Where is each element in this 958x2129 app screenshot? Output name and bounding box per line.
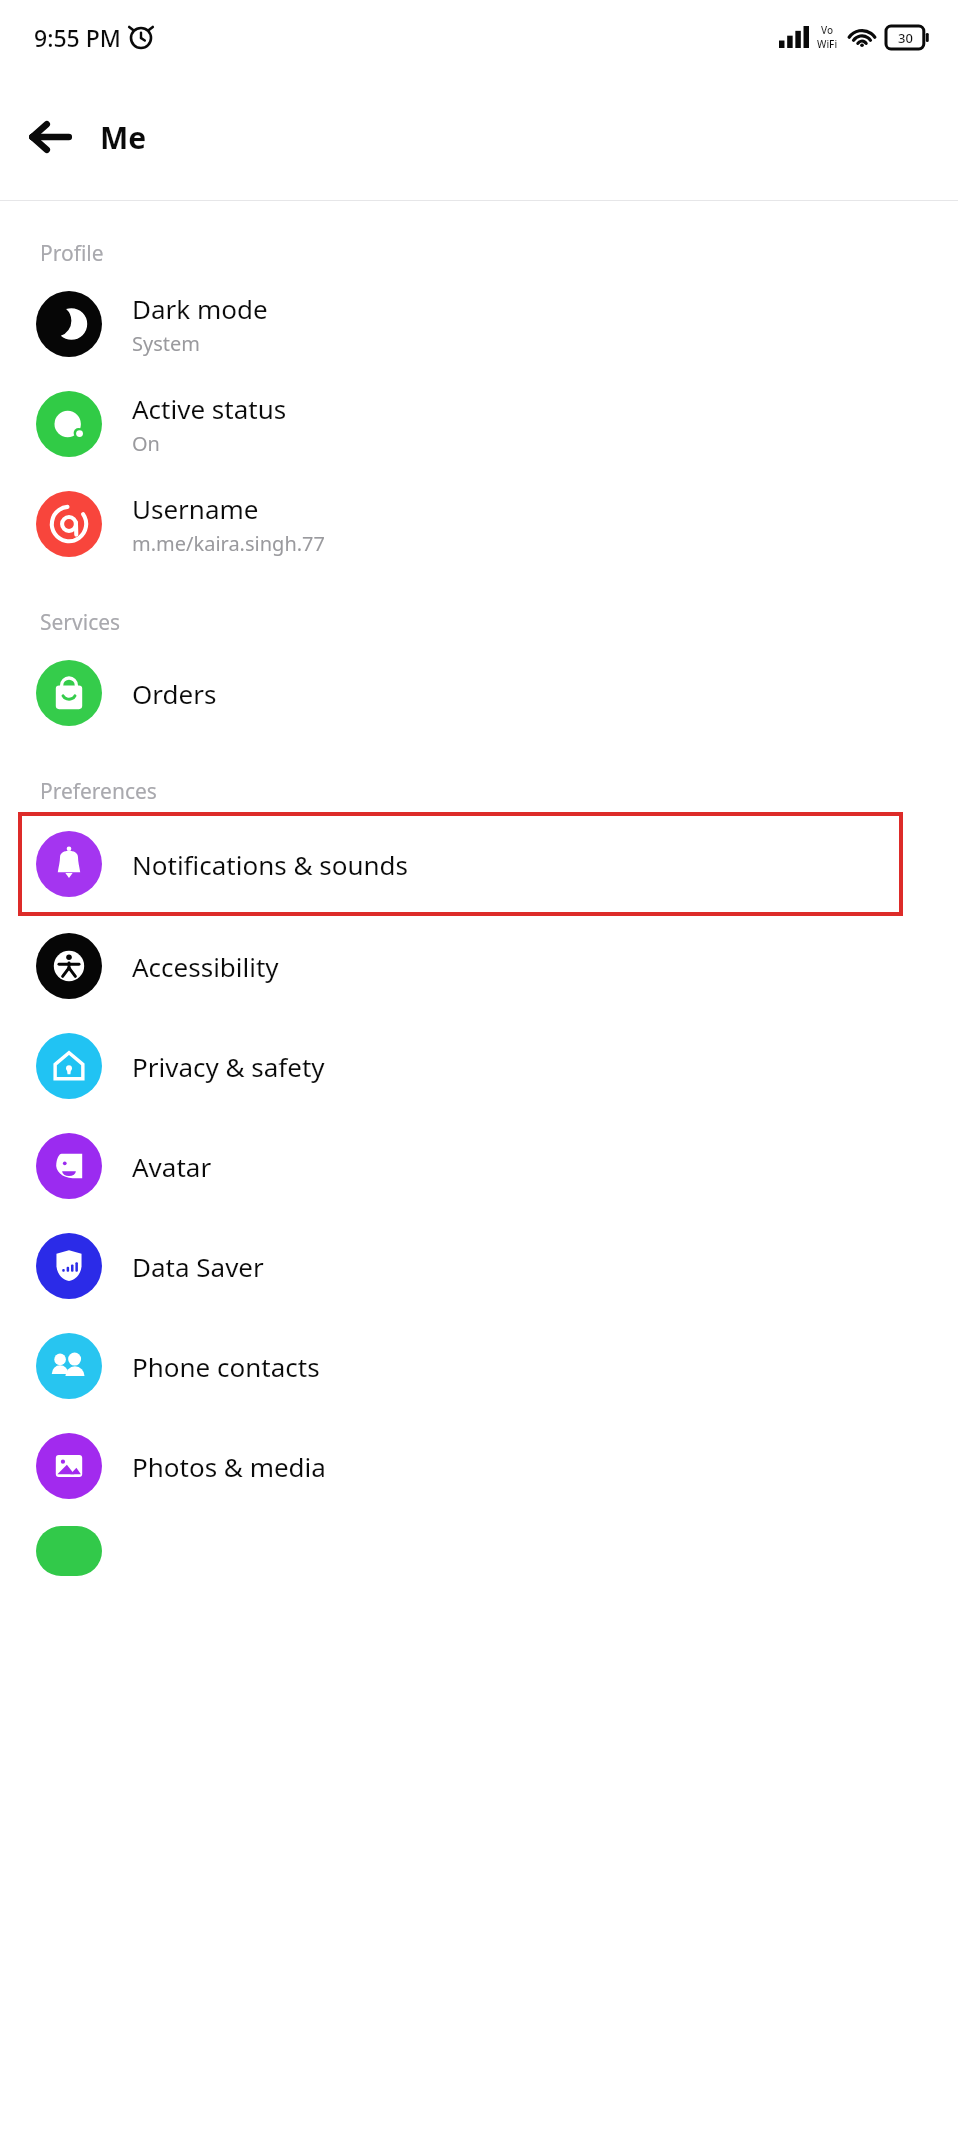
- staticText: Privacy & safety: [132, 1049, 325, 1084]
- button[interactable]: Photos & media: [0, 1416, 958, 1516]
- button[interactable]: Orders: [0, 643, 958, 743]
- button[interactable]: Phone contacts: [0, 1316, 958, 1416]
- staticText: Vo: [821, 23, 834, 37]
- staticText: On: [132, 430, 160, 457]
- button[interactable]: Dark mode: [0, 274, 958, 374]
- staticText: Services: [40, 608, 121, 637]
- staticText: Profile: [40, 239, 104, 268]
- button[interactable]: Active status: [0, 374, 958, 474]
- staticText: 9:55 PM: [34, 22, 121, 53]
- staticText: Notifications & sounds: [132, 847, 408, 882]
- button[interactable]: Data Saver: [0, 1216, 958, 1316]
- staticText: Preferences: [40, 777, 157, 806]
- staticText: Accessibility: [132, 949, 279, 984]
- staticText: 30: [898, 29, 913, 47]
- staticText: WiFi: [817, 37, 838, 51]
- button[interactable]: Privacy & safety: [0, 1016, 958, 1116]
- staticText: Active status: [132, 391, 287, 426]
- staticText: Orders: [132, 676, 217, 711]
- staticText: m.me/kaira.singh.77: [132, 530, 325, 557]
- button[interactable]: Notifications & sounds: [18, 812, 903, 916]
- button[interactable]: [0, 1516, 958, 1576]
- staticText: Username: [132, 491, 259, 526]
- staticText: Data Saver: [132, 1249, 264, 1284]
- staticText: Me: [100, 117, 147, 158]
- staticText: Dark mode: [132, 291, 268, 326]
- button[interactable]: Accessibility: [0, 916, 958, 1016]
- button[interactable]: Back: [14, 101, 86, 173]
- staticText: Photos & media: [132, 1449, 326, 1484]
- staticText: System: [132, 330, 200, 357]
- button[interactable]: Avatar: [0, 1116, 958, 1216]
- button[interactable]: Username: [0, 474, 958, 574]
- staticText: Avatar: [132, 1149, 212, 1184]
- staticText: Phone contacts: [132, 1349, 320, 1384]
